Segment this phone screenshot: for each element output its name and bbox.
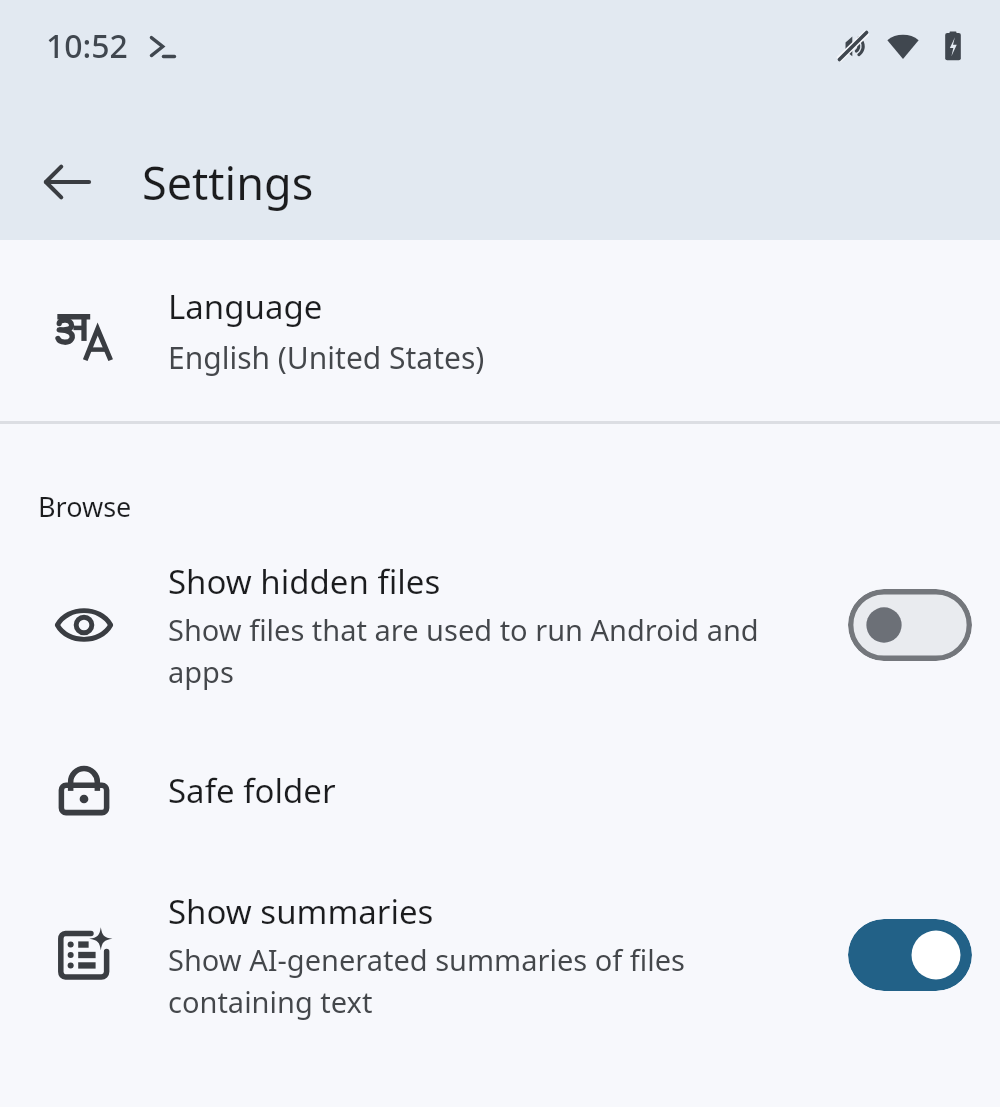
staticText: Show files that are used to run Android … [168, 610, 802, 691]
staticText: Settings [142, 152, 314, 213]
staticText: 10:52 [46, 24, 128, 68]
button[interactable]: Back [34, 149, 100, 215]
button[interactable]: Safe folder [0, 725, 1000, 855]
staticText: Browse [38, 488, 132, 525]
staticText: Language [168, 284, 323, 329]
staticText: Show summaries [168, 889, 434, 934]
staticText: Safe folder [168, 768, 336, 813]
staticText: Show AI-generated summaries of files con… [168, 940, 802, 1021]
button[interactable]: Show summaries [0, 855, 1000, 1055]
button[interactable]: Language [0, 240, 1000, 421]
button[interactable]: On [848, 919, 972, 991]
staticText: Show hidden files [168, 559, 441, 604]
button[interactable]: Show hidden files [0, 525, 1000, 725]
staticText: English (United States) [168, 337, 485, 378]
button[interactable]: Off [848, 589, 972, 661]
